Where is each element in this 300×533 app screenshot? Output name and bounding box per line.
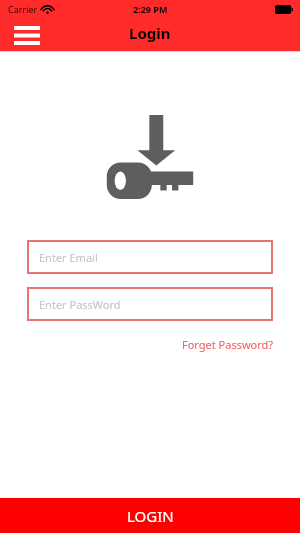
staticText: Login bbox=[129, 23, 171, 43]
button[interactable]: Open navigation menu bbox=[10, 22, 44, 48]
staticText: Carrier bbox=[8, 3, 38, 15]
button[interactable]: Enter Email bbox=[27, 240, 273, 274]
staticText: 2:29 PM bbox=[133, 3, 168, 15]
staticText: Enter PassWord bbox=[39, 297, 121, 312]
button[interactable]: Enter PassWord bbox=[27, 287, 273, 321]
staticText: Forget Password? bbox=[182, 337, 274, 352]
button[interactable]: Forget Password? bbox=[180, 335, 276, 354]
button[interactable]: LOGIN bbox=[0, 498, 300, 533]
staticText: Enter Email bbox=[39, 250, 98, 265]
staticText: LOGIN bbox=[127, 506, 174, 526]
